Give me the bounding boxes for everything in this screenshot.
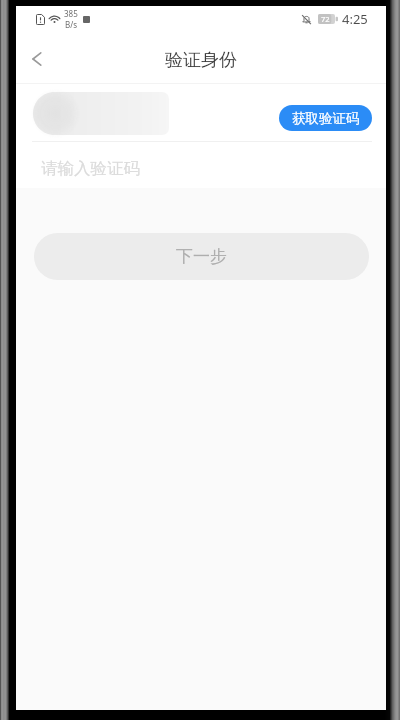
staticText: 下一步	[176, 246, 227, 267]
button[interactable]: 获取验证码	[279, 105, 372, 131]
staticText: 385	[64, 8, 78, 19]
staticText: 请输入验证码	[41, 158, 140, 179]
staticText: 4:25	[342, 10, 368, 28]
staticText: 72	[321, 14, 330, 24]
button[interactable]: Back	[19, 40, 55, 76]
staticText: 获取验证码	[292, 110, 360, 127]
staticText: 验证身份	[165, 49, 237, 72]
staticText: B/s	[65, 19, 78, 30]
button[interactable]: Phone number	[33, 92, 169, 135]
button[interactable]: 下一步	[34, 233, 369, 280]
button[interactable]: 请输入验证码	[16, 142, 386, 188]
